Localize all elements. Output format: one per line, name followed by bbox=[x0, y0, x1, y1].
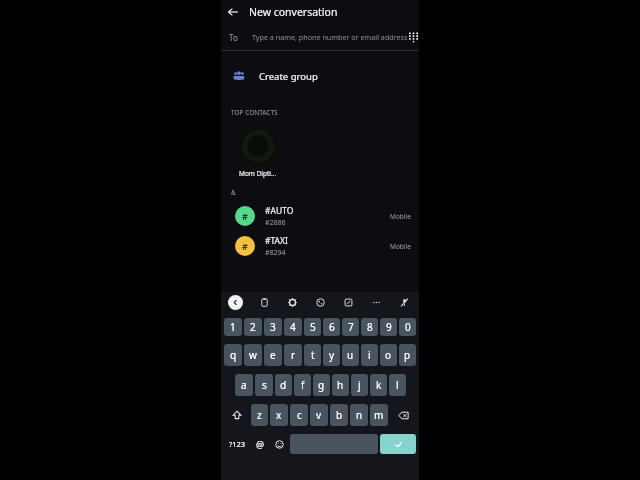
button[interactable]: To bbox=[221, 24, 419, 50]
button[interactable]: 5 bbox=[304, 318, 321, 336]
staticText: a bbox=[241, 378, 247, 392]
staticText: c bbox=[297, 408, 302, 422]
button[interactable]: g bbox=[313, 374, 330, 396]
button[interactable]: s bbox=[255, 374, 273, 396]
button[interactable]: Create group bbox=[221, 63, 419, 89]
staticText: # bbox=[242, 210, 248, 222]
button[interactable]: Clipboard bbox=[256, 294, 272, 310]
staticText: 0 bbox=[405, 320, 411, 334]
staticText: #AUTO bbox=[265, 205, 294, 217]
button[interactable]: # bbox=[221, 201, 419, 231]
staticText: 5 bbox=[310, 320, 316, 334]
button[interactable]: More options bbox=[368, 294, 384, 310]
staticText: d bbox=[280, 378, 287, 392]
staticText: & bbox=[231, 188, 236, 197]
button[interactable]: a bbox=[235, 374, 253, 396]
staticText: #2886 bbox=[265, 218, 286, 228]
staticText: u bbox=[347, 348, 354, 362]
staticText: # bbox=[242, 240, 248, 252]
staticText: Create group bbox=[259, 70, 318, 83]
staticText: y bbox=[329, 348, 335, 362]
button[interactable]: 2 bbox=[244, 318, 262, 336]
button[interactable]: l bbox=[389, 374, 406, 396]
button[interactable]: p bbox=[399, 344, 416, 366]
staticText: g bbox=[318, 378, 325, 392]
button[interactable]: r bbox=[284, 344, 302, 366]
button[interactable]: h bbox=[332, 374, 349, 396]
button[interactable]: 9 bbox=[380, 318, 397, 336]
staticText: @ bbox=[256, 438, 265, 450]
button[interactable]: Voice input off bbox=[396, 294, 412, 310]
button[interactable]: Space bbox=[290, 434, 378, 454]
staticText: TOP CONTACTS bbox=[231, 108, 278, 117]
staticText: 8 bbox=[367, 320, 373, 334]
button[interactable]: d bbox=[275, 374, 292, 396]
staticText: New conversation bbox=[249, 5, 338, 19]
staticText: 6 bbox=[329, 320, 335, 334]
staticText: To bbox=[229, 32, 238, 43]
button[interactable]: 8 bbox=[361, 318, 378, 336]
staticText: o bbox=[385, 348, 392, 362]
button[interactable]: m bbox=[370, 404, 388, 426]
button[interactable]: At sign bbox=[251, 432, 270, 456]
button[interactable]: x bbox=[270, 404, 288, 426]
staticText: v bbox=[316, 408, 322, 422]
staticText: m bbox=[374, 408, 384, 422]
staticText: #TAXI bbox=[265, 235, 288, 247]
button[interactable]: 0 bbox=[399, 318, 416, 336]
button[interactable]: c bbox=[290, 404, 308, 426]
staticText: 4 bbox=[290, 320, 296, 334]
staticText: w bbox=[249, 348, 257, 362]
staticText: Mom Dipti... bbox=[239, 169, 277, 178]
staticText: f bbox=[301, 378, 305, 392]
button[interactable]: Enter bbox=[380, 434, 416, 454]
staticText: q bbox=[230, 348, 237, 362]
button[interactable]: Stickers bbox=[312, 294, 328, 310]
button[interactable]: ?123 bbox=[223, 432, 251, 456]
button[interactable]: o bbox=[380, 344, 397, 366]
button[interactable]: z bbox=[251, 404, 268, 426]
staticText: l bbox=[396, 378, 399, 392]
button[interactable]: 6 bbox=[323, 318, 340, 336]
button[interactable]: f bbox=[294, 374, 311, 396]
button[interactable]: Translate bbox=[340, 294, 356, 310]
button[interactable]: i bbox=[361, 344, 378, 366]
button[interactable]: b bbox=[330, 404, 348, 426]
button[interactable]: 1 bbox=[224, 318, 242, 336]
staticText: p bbox=[404, 348, 411, 362]
button[interactable]: w bbox=[244, 344, 262, 366]
button[interactable]: Mom Dipti... bbox=[235, 127, 281, 178]
button[interactable]: Back bbox=[228, 295, 243, 310]
button[interactable]: v bbox=[310, 404, 328, 426]
button[interactable]: k bbox=[370, 374, 387, 396]
button[interactable]: 7 bbox=[342, 318, 359, 336]
button[interactable]: Dialpad bbox=[408, 27, 419, 47]
button[interactable]: Backspace bbox=[389, 402, 417, 428]
button[interactable]: u bbox=[342, 344, 359, 366]
button[interactable]: y bbox=[323, 344, 340, 366]
staticText: t bbox=[311, 348, 315, 362]
staticText: h bbox=[337, 378, 344, 392]
button[interactable]: Shift bbox=[223, 402, 250, 428]
button[interactable]: j bbox=[351, 374, 368, 396]
staticText: z bbox=[257, 408, 262, 422]
button[interactable]: Emoji bbox=[270, 432, 289, 456]
staticText: b bbox=[336, 408, 343, 422]
button[interactable]: 3 bbox=[264, 318, 282, 336]
staticText: s bbox=[262, 378, 267, 392]
button[interactable]: Settings bbox=[284, 294, 300, 310]
button[interactable]: n bbox=[350, 404, 368, 426]
button[interactable]: # bbox=[221, 231, 419, 261]
staticText: #8294 bbox=[265, 248, 286, 258]
button[interactable]: e bbox=[264, 344, 282, 366]
staticText: 3 bbox=[270, 320, 276, 334]
staticText: ?123 bbox=[229, 439, 246, 449]
staticText: Mobile bbox=[390, 242, 411, 251]
button[interactable]: q bbox=[224, 344, 242, 366]
staticText: e bbox=[270, 348, 276, 362]
button[interactable]: t bbox=[304, 344, 321, 366]
button[interactable]: 4 bbox=[284, 318, 302, 336]
staticText: k bbox=[376, 378, 382, 392]
button[interactable]: Back bbox=[221, 0, 245, 24]
staticText: 9 bbox=[386, 320, 392, 334]
